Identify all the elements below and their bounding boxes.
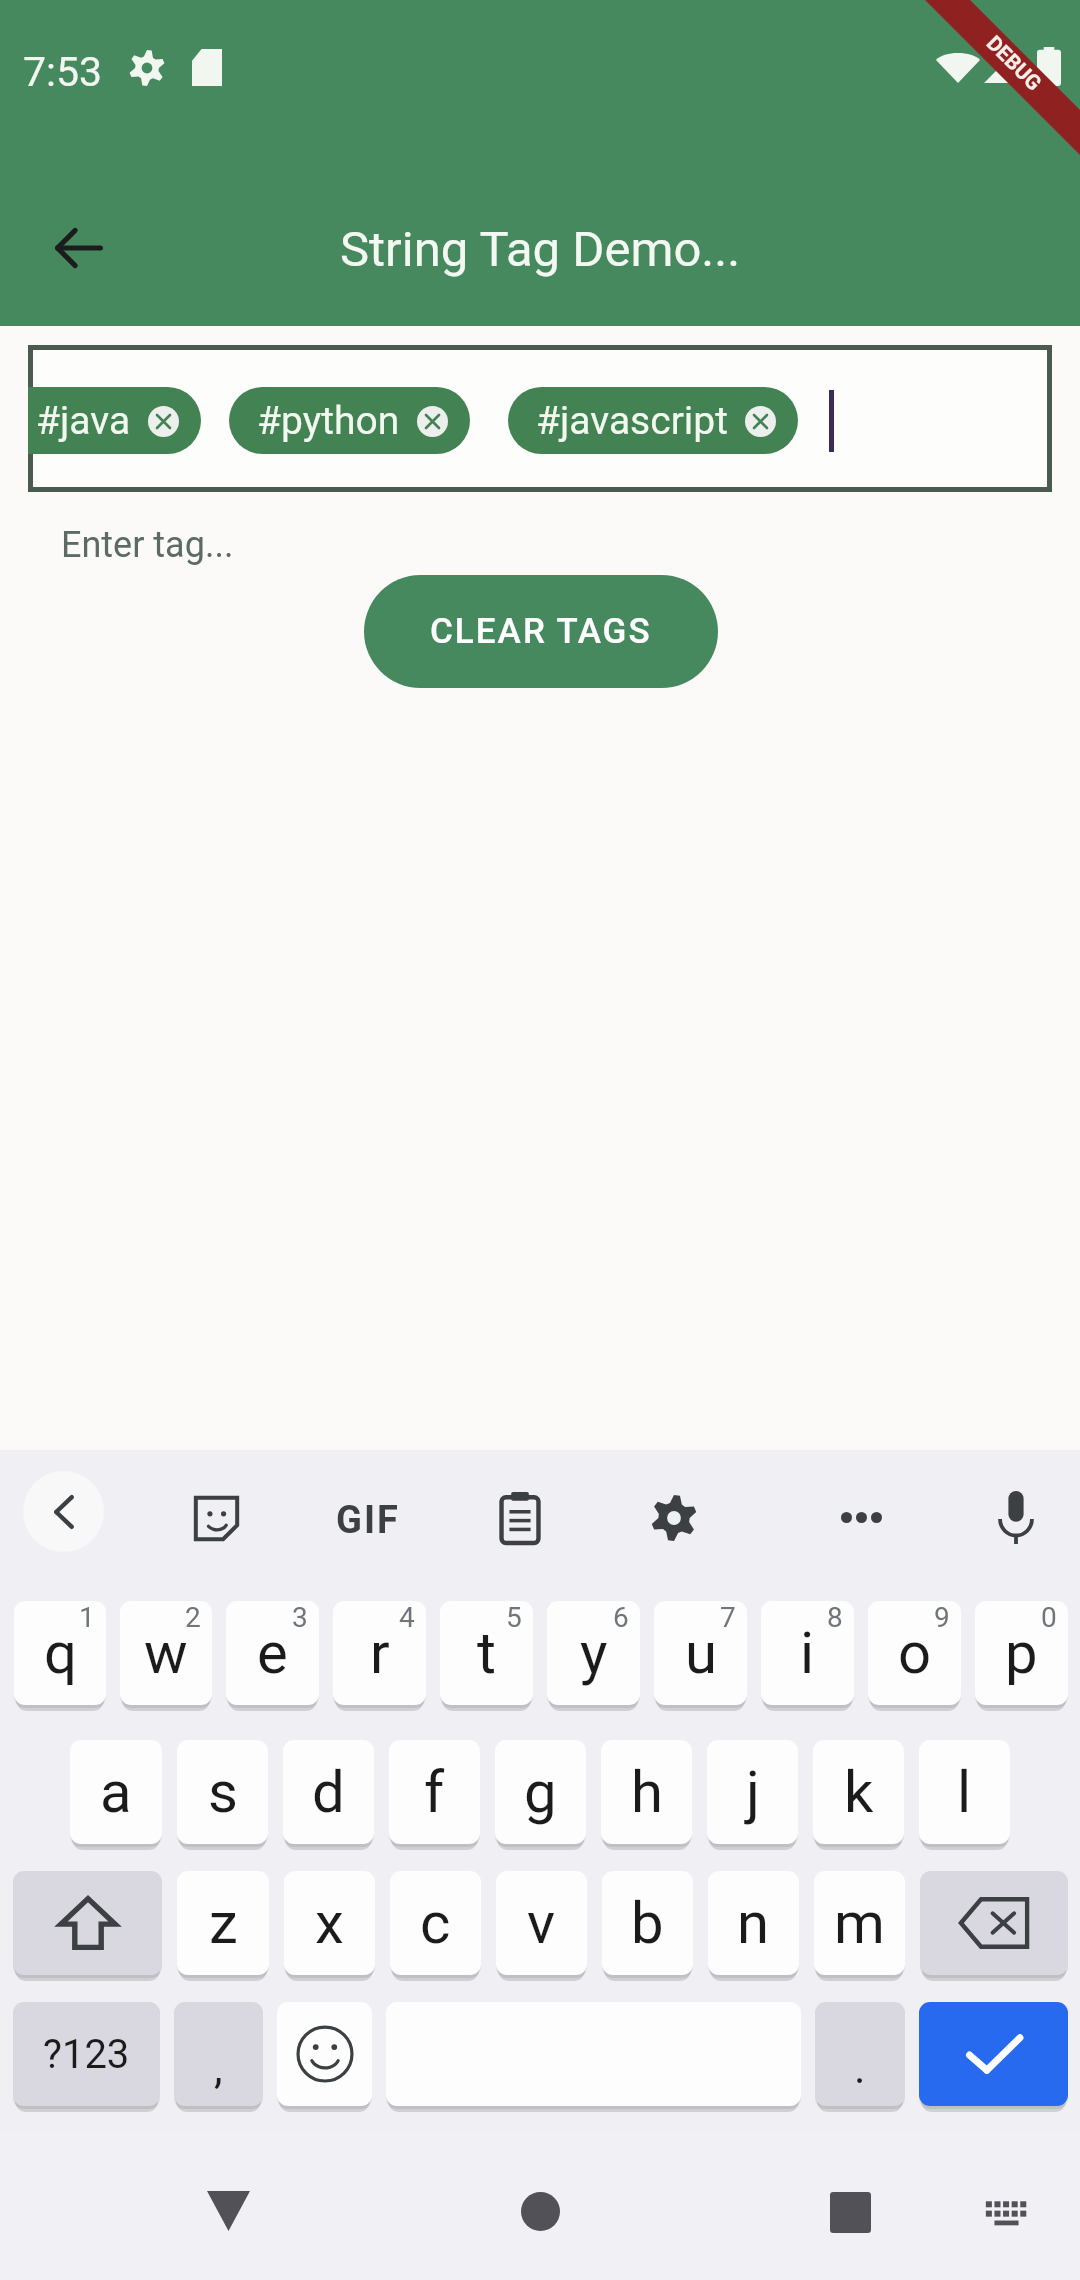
staticText: 5	[506, 1601, 522, 1634]
staticText: v	[527, 1889, 556, 1957]
button[interactable]: z	[177, 1871, 269, 1975]
staticText: .	[854, 2042, 866, 2094]
staticText: 0	[1041, 1601, 1057, 1634]
staticText: e	[257, 1619, 288, 1687]
button[interactable]: Period	[815, 2002, 905, 2106]
button[interactable]: r	[333, 1601, 426, 1705]
button[interactable]: d	[283, 1740, 374, 1844]
button[interactable]: w	[120, 1601, 212, 1705]
button[interactable]: t	[440, 1601, 533, 1705]
button[interactable]: Shift	[13, 1871, 162, 1975]
staticText: r	[370, 1619, 390, 1687]
button[interactable]: e	[226, 1601, 319, 1705]
staticText: m	[834, 1889, 885, 1957]
button[interactable]: #java	[28, 387, 201, 454]
staticText: p	[1005, 1619, 1038, 1687]
button[interactable]: Back	[31, 200, 127, 296]
button[interactable]: CLEAR TAGS	[364, 575, 718, 688]
staticText: y	[580, 1619, 608, 1687]
button[interactable]: GIF	[336, 1498, 400, 1543]
button[interactable]: v	[496, 1871, 587, 1975]
staticText: o	[898, 1619, 932, 1687]
button[interactable]: x	[284, 1871, 375, 1975]
staticText: 2	[185, 1601, 201, 1634]
staticText: c	[420, 1889, 451, 1957]
staticText: a	[100, 1758, 132, 1826]
staticText: d	[312, 1758, 345, 1826]
staticText: Enter tag...	[61, 524, 234, 566]
staticText: 7	[720, 1601, 736, 1634]
staticText: f	[424, 1758, 445, 1826]
button[interactable]: Symbols	[13, 2002, 160, 2106]
button[interactable]: a	[70, 1740, 162, 1844]
button[interactable]: Hide keyboard	[207, 2191, 250, 2231]
staticText: ?123	[43, 2031, 130, 2078]
staticText: CLEAR TAGS	[430, 611, 652, 652]
staticText: i	[800, 1619, 815, 1687]
button[interactable]: #javascript	[508, 387, 798, 454]
staticText: q	[44, 1619, 77, 1687]
staticText: #javascript	[536, 398, 728, 444]
staticText: j	[746, 1758, 760, 1826]
button[interactable]: f	[389, 1740, 480, 1844]
button[interactable]: Emoji	[277, 2002, 372, 2106]
staticText: #java	[36, 398, 131, 444]
staticText: 4	[399, 1601, 415, 1634]
button[interactable]: u	[654, 1601, 747, 1705]
button[interactable]: y	[547, 1601, 640, 1705]
staticText: 9	[934, 1601, 950, 1634]
staticText: 1	[79, 1601, 95, 1634]
button[interactable]: More options	[841, 1512, 882, 1523]
staticText: 7:53	[23, 48, 103, 96]
button[interactable]: Voice input	[997, 1491, 1035, 1544]
staticText: n	[737, 1889, 770, 1957]
button[interactable]: h	[601, 1740, 692, 1844]
button[interactable]: Settings	[651, 1495, 697, 1541]
button[interactable]: c	[390, 1871, 481, 1975]
staticText: z	[209, 1889, 238, 1957]
staticText: 8	[827, 1601, 843, 1634]
staticText: #python	[257, 398, 400, 444]
staticText: t	[477, 1619, 496, 1687]
staticText: DEBUG	[981, 31, 1046, 96]
button[interactable]: q	[14, 1601, 106, 1705]
button[interactable]: b	[602, 1871, 693, 1975]
staticText: 3	[292, 1601, 308, 1634]
button[interactable]: Previous	[23, 1471, 104, 1552]
button[interactable]: Done	[919, 2002, 1068, 2106]
button[interactable]: g	[495, 1740, 586, 1844]
button[interactable]: n	[708, 1871, 799, 1975]
staticText: u	[685, 1619, 717, 1687]
staticText: s	[208, 1758, 238, 1826]
button[interactable]: Backspace	[920, 1871, 1068, 1975]
staticText: k	[844, 1758, 874, 1826]
button[interactable]: Home	[521, 2192, 560, 2231]
button[interactable]: #python	[229, 387, 470, 454]
button[interactable]: o	[868, 1601, 961, 1705]
button[interactable]: s	[177, 1740, 268, 1844]
button[interactable]: Stickers	[193, 1495, 240, 1542]
staticText: h	[631, 1758, 663, 1826]
staticText: l	[957, 1758, 972, 1826]
button[interactable]: Recent apps	[830, 2192, 871, 2233]
button[interactable]: m	[814, 1871, 905, 1975]
staticText: b	[631, 1889, 664, 1957]
staticText: 6	[613, 1601, 629, 1634]
button[interactable]: Switch keyboard	[985, 2200, 1028, 2226]
button[interactable]: k	[813, 1740, 904, 1844]
button[interactable]: l	[919, 1740, 1010, 1844]
staticText: GIF	[336, 1498, 400, 1543]
button[interactable]: Clipboard	[498, 1492, 542, 1544]
button[interactable]: j	[707, 1740, 798, 1844]
staticText: x	[315, 1889, 344, 1957]
staticText: ,	[214, 2042, 223, 2094]
button[interactable]: i	[761, 1601, 854, 1705]
staticText: w	[144, 1619, 188, 1687]
button[interactable]: p	[975, 1601, 1068, 1705]
staticText: String Tag Demo...	[340, 221, 741, 278]
staticText: g	[524, 1758, 557, 1826]
button[interactable]: Comma	[174, 2002, 263, 2106]
